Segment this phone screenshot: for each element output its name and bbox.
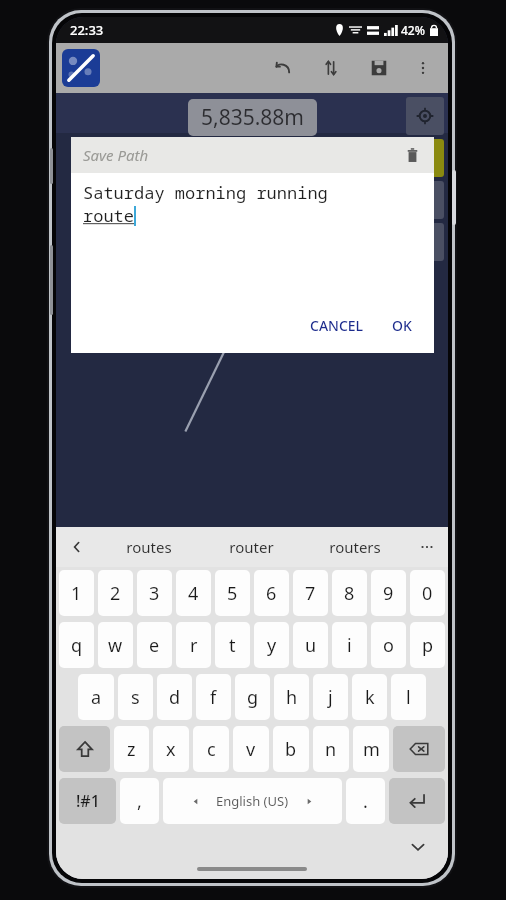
button[interactable]: r: [176, 622, 211, 668]
button[interactable]: Layers: [406, 181, 444, 219]
staticText: g: [247, 685, 259, 710]
button[interactable]: English (US): [163, 778, 342, 824]
staticText: 1: [71, 581, 82, 606]
button[interactable]: a: [78, 674, 114, 720]
button[interactable]: p: [410, 622, 445, 668]
staticText: b: [285, 737, 297, 762]
staticText: d: [169, 685, 181, 710]
staticText: .: [363, 789, 368, 814]
button[interactable]: h: [274, 674, 309, 720]
button[interactable]: 9: [371, 570, 406, 616]
staticText: route: [83, 204, 134, 227]
button[interactable]: Backspace: [393, 726, 445, 772]
button[interactable]: 3: [137, 570, 172, 616]
staticText: v: [246, 737, 256, 762]
button[interactable]: v: [233, 726, 269, 772]
staticText: Save Path: [83, 145, 149, 165]
button[interactable]: CANCEL: [302, 312, 372, 339]
button[interactable]: g: [235, 674, 270, 720]
button[interactable]: z: [114, 726, 149, 772]
staticText: x: [166, 737, 176, 762]
button[interactable]: k: [352, 674, 387, 720]
button[interactable]: Reverse: [314, 51, 348, 85]
staticText: q: [71, 633, 83, 658]
staticText: 5: [227, 581, 238, 606]
staticText: 42%: [401, 22, 425, 38]
staticText: c: [207, 737, 216, 762]
button[interactable]: q: [59, 622, 94, 668]
button[interactable]: Hide keyboard: [404, 833, 432, 861]
button[interactable]: Previous: [56, 527, 98, 567]
button[interactable]: 4: [176, 570, 211, 616]
staticText: n: [325, 737, 337, 762]
button[interactable]: m: [353, 726, 389, 772]
button[interactable]: j: [313, 674, 348, 720]
button[interactable]: 1: [59, 570, 94, 616]
button[interactable]: w: [98, 622, 133, 668]
button[interactable]: 8: [332, 570, 367, 616]
button[interactable]: Undo: [266, 51, 300, 85]
staticText: 22:33: [70, 21, 104, 39]
button[interactable]: routes: [98, 527, 200, 567]
staticText: English (US): [216, 792, 289, 810]
staticText: a: [91, 685, 102, 710]
button[interactable]: f: [196, 674, 231, 720]
button[interactable]: e: [137, 622, 172, 668]
button[interactable]: 2: [98, 570, 133, 616]
staticText: h: [286, 685, 298, 710]
button[interactable]: o: [371, 622, 406, 668]
button[interactable]: n: [313, 726, 349, 772]
button[interactable]: 6: [254, 570, 289, 616]
button[interactable]: OK: [384, 312, 420, 339]
button[interactable]: c: [193, 726, 229, 772]
button[interactable]: 5: [215, 570, 250, 616]
staticText: router: [229, 537, 274, 557]
staticText: CANCEL: [310, 316, 364, 335]
staticText: 7: [305, 581, 316, 606]
button[interactable]: b: [273, 726, 309, 772]
button[interactable]: s: [118, 674, 153, 720]
staticText: 2: [110, 581, 121, 606]
staticText: o: [383, 633, 394, 658]
staticText: r: [190, 633, 198, 658]
staticText: 5,835.88m: [201, 103, 304, 132]
button[interactable]: ,: [120, 778, 159, 824]
button[interactable]: Enter: [389, 778, 445, 824]
staticText: f: [210, 685, 217, 710]
button[interactable]: router: [200, 527, 303, 567]
button[interactable]: t: [215, 622, 250, 668]
button[interactable]: l: [391, 674, 426, 720]
staticText: routers: [329, 537, 381, 557]
button[interactable]: 7: [293, 570, 328, 616]
staticText: l: [406, 685, 411, 710]
button[interactable]: d: [157, 674, 192, 720]
button[interactable]: 5,835.88m: [201, 103, 304, 132]
button[interactable]: More suggestions: [406, 527, 448, 567]
button[interactable]: !#1: [59, 778, 116, 824]
button[interactable]: routers: [303, 527, 406, 567]
button[interactable]: App icon: [62, 49, 100, 87]
button[interactable]: x: [153, 726, 189, 772]
button[interactable]: i: [332, 622, 367, 668]
staticText: 3: [149, 581, 160, 606]
staticText: y: [267, 633, 277, 658]
button[interactable]: Shift: [59, 726, 110, 772]
button[interactable]: More options: [406, 51, 440, 85]
button[interactable]: Compass: [406, 223, 444, 261]
button[interactable]: Delete: [398, 141, 426, 169]
button[interactable]: y: [254, 622, 289, 668]
button[interactable]: 0: [410, 570, 445, 616]
button[interactable]: Save: [362, 51, 396, 85]
staticText: Saturday morning running: [83, 181, 328, 204]
staticText: k: [365, 685, 375, 710]
staticText: p: [422, 633, 434, 658]
button[interactable]: .: [346, 778, 385, 824]
staticText: j: [328, 685, 333, 710]
staticText: m: [363, 737, 380, 762]
staticText: ,: [137, 789, 142, 814]
staticText: z: [127, 737, 136, 762]
button[interactable]: u: [293, 622, 328, 668]
button[interactable]: Record: [406, 139, 444, 177]
staticText: routes: [126, 537, 172, 557]
button[interactable]: My location: [406, 97, 444, 135]
